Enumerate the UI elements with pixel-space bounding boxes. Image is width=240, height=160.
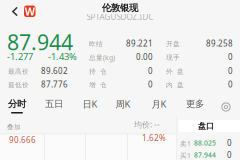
- staticText: 均价: --: [134, 119, 160, 130]
- staticText: 开盘: [166, 40, 180, 48]
- button[interactable]: 五日: [43, 99, 65, 116]
- staticText: 买1: [180, 151, 191, 160]
- staticText: -1.277: [7, 50, 33, 63]
- staticText: 0: [228, 52, 233, 62]
- staticText: 昨结: [89, 40, 103, 48]
- staticText: -1.43%: [48, 50, 77, 63]
- staticText: 卖1: [180, 139, 191, 148]
- staticText: 0: [228, 66, 233, 76]
- staticText: 0: [148, 66, 153, 76]
- staticText: W: [25, 4, 35, 18]
- button[interactable]: Settings: [219, 100, 233, 114]
- staticText: 87.776: [41, 79, 68, 90]
- staticText: 外 盘: [166, 67, 184, 76]
- staticText: 87.944: [194, 151, 216, 159]
- button[interactable]: Weibo: [24, 5, 35, 17]
- staticText: 90.666: [9, 135, 36, 145]
- button[interactable]: 周K: [112, 99, 134, 116]
- staticText: 总量(kg): [89, 53, 115, 62]
- staticText: 0: [227, 150, 232, 160]
- staticText: 89.602: [41, 66, 68, 76]
- staticText: 最低价: [8, 81, 29, 89]
- staticText: 现手: [166, 53, 180, 62]
- staticText: 更多: [186, 98, 204, 110]
- button[interactable]: 日K: [79, 99, 101, 116]
- button[interactable]: Back: [7, 3, 23, 19]
- staticText: 分时: [8, 98, 26, 110]
- staticText: 89.258: [206, 38, 233, 49]
- staticText: 88.025: [194, 139, 216, 147]
- staticText: 盘口: [198, 121, 214, 131]
- staticText: 月K: [151, 98, 166, 110]
- staticText: 日K: [82, 98, 97, 110]
- staticText: 增 仓: [89, 81, 107, 89]
- staticText: 周K: [115, 98, 130, 110]
- staticText: 1.62%: [142, 133, 166, 143]
- button[interactable]: 分时: [6, 99, 28, 116]
- staticText: 叠加: [7, 123, 21, 131]
- staticText: 0.00: [136, 52, 153, 62]
- staticText: 0: [148, 79, 153, 90]
- staticText: 87.944: [7, 28, 73, 56]
- staticText: 内 盘: [166, 81, 184, 89]
- staticText: SPTAGUSDOZ.IDC: [86, 12, 153, 22]
- button[interactable]: 更多: [184, 99, 206, 116]
- staticText: 0: [227, 138, 232, 148]
- staticText: 五日: [45, 98, 63, 110]
- staticText: 伦敦银现: [102, 2, 138, 14]
- staticText: 最高价: [8, 67, 29, 76]
- staticText: 89.221: [126, 38, 153, 49]
- button[interactable]: 月K: [148, 99, 170, 116]
- staticText: 0: [228, 79, 233, 90]
- staticText: 持 仓: [89, 67, 107, 76]
